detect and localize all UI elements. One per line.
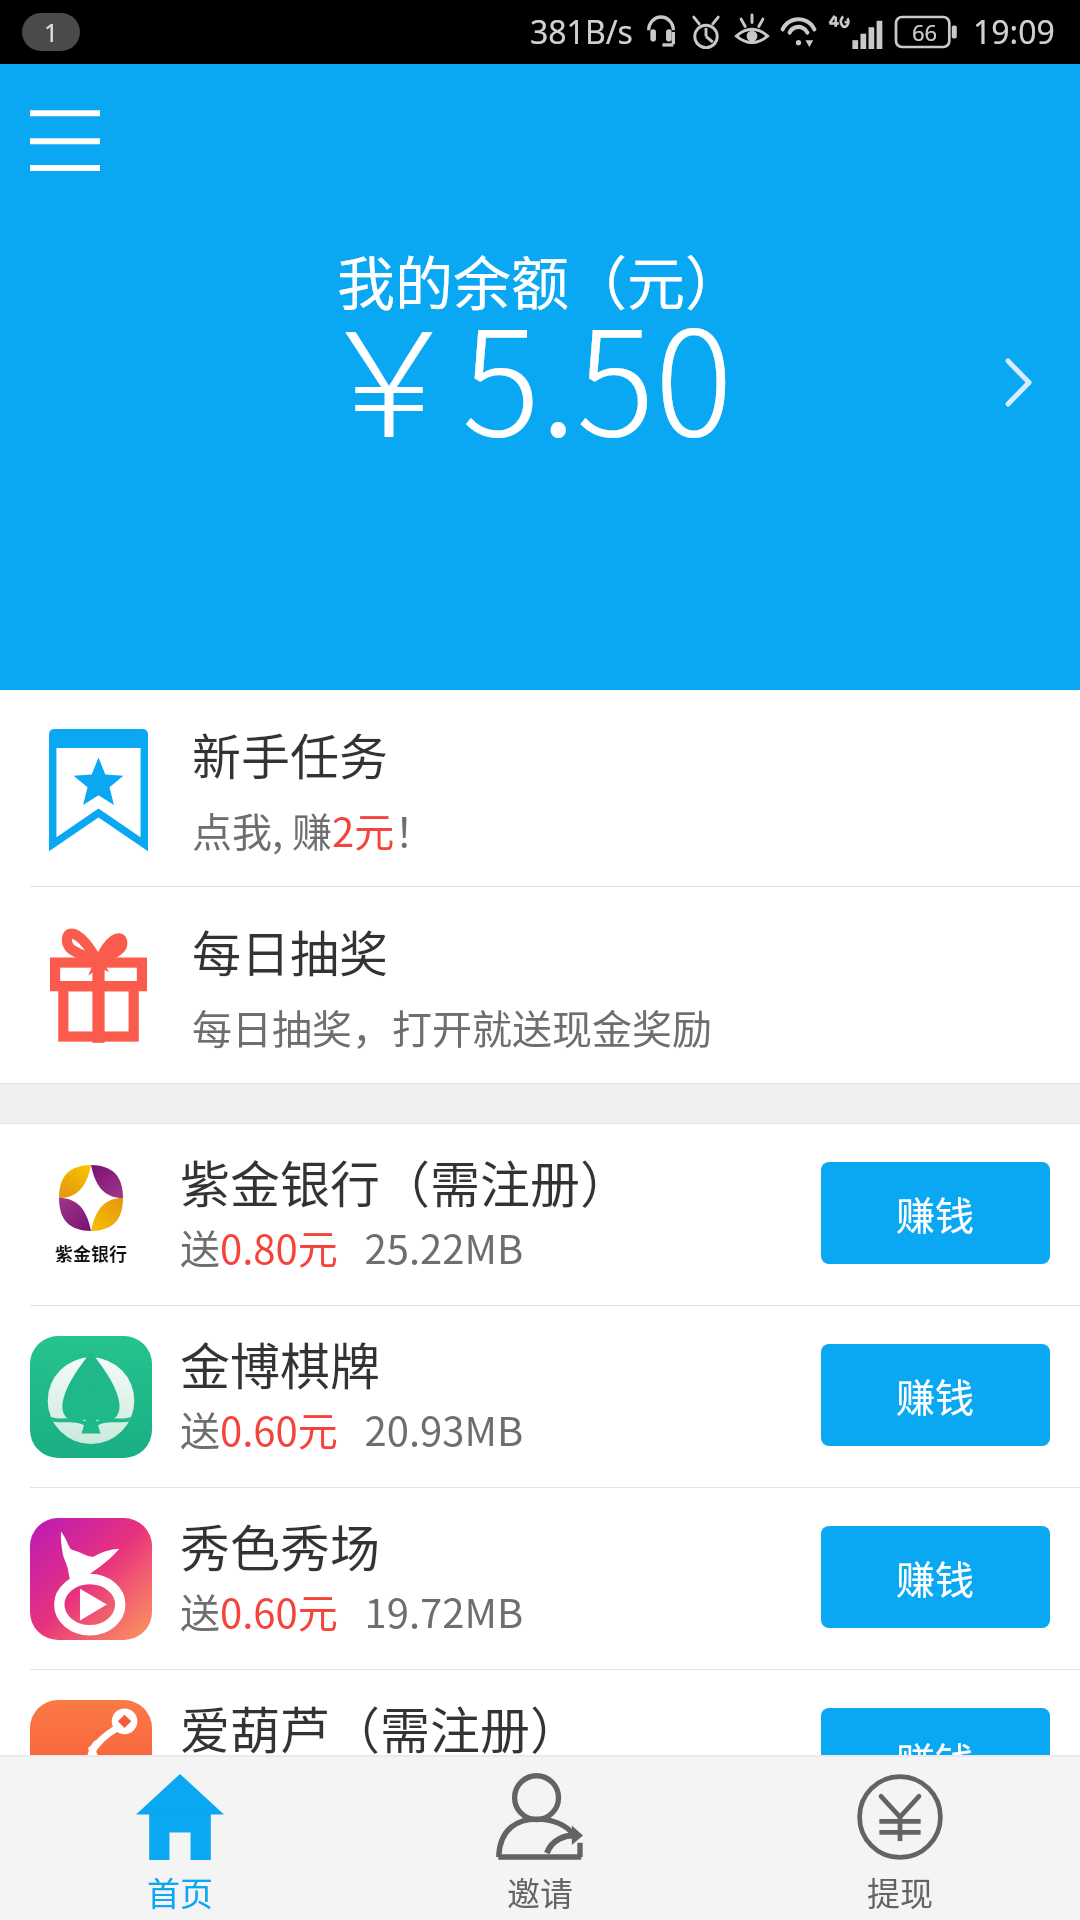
staticText: ￥5.50 [316, 267, 733, 478]
staticText: 送0.80元 25.22MB [180, 1218, 524, 1276]
staticText: 新手任务 [192, 718, 389, 789]
staticText: 66 [912, 17, 938, 47]
button[interactable]: 赚钱 [821, 1708, 1050, 1810]
staticText: 金博棋牌 [180, 1327, 380, 1399]
staticText: 秀色秀场 [180, 1509, 380, 1581]
button[interactable]: 邀请 [360, 1757, 720, 1920]
staticText: 送0.60元 20.93MB [180, 1400, 524, 1458]
button[interactable]: Balance details [976, 340, 1060, 424]
staticText: 每日抽奖 [192, 915, 389, 986]
button[interactable]: 提现 [720, 1757, 1080, 1920]
button[interactable]: 赚钱 [821, 1162, 1050, 1264]
staticText: 首页 [147, 1868, 213, 1916]
staticText: 点我, 赚2元！ [192, 801, 435, 859]
staticText: 紫金银行 [55, 1240, 127, 1266]
button[interactable]: 赚钱 [821, 1526, 1050, 1628]
staticText: 提现 [867, 1868, 933, 1916]
staticText: 送0.80元 17.01MB [180, 1764, 524, 1822]
staticText: 每日抽奖，打开就送现金奖励 [192, 998, 712, 1056]
staticText: 赚钱 [896, 1185, 975, 1241]
staticText: 赚钱 [896, 1731, 975, 1787]
staticText: 邀请 [507, 1868, 573, 1916]
staticText: 赚钱 [896, 1367, 975, 1423]
button[interactable]: 赚钱 [821, 1344, 1050, 1446]
staticText: 送0.60元 19.72MB [180, 1582, 524, 1640]
staticText: 赚钱 [896, 1549, 975, 1605]
staticText: 我的余额（元） [337, 238, 744, 322]
staticText: 紫金银行（需注册） [180, 1145, 630, 1217]
button[interactable]: 新手任务 [0, 690, 1080, 886]
staticText: 爱葫芦（需注册） [180, 1691, 580, 1763]
button[interactable]: 首页 [0, 1757, 360, 1920]
staticText: 1 [44, 15, 59, 49]
staticText: 19:09 [973, 10, 1055, 54]
staticText: 381B/s [530, 10, 633, 54]
button[interactable]: Menu [30, 109, 100, 171]
button[interactable]: 每日抽奖 [0, 887, 1080, 1083]
